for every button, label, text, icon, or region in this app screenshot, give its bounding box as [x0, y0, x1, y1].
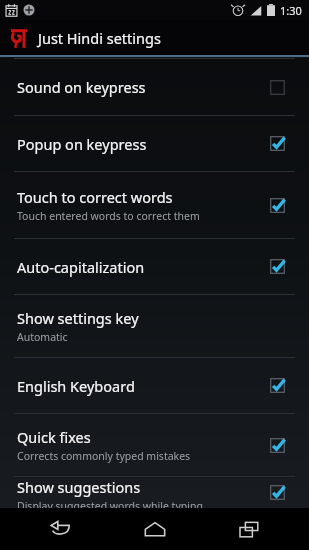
button[interactable]: Recent apps	[214, 508, 284, 550]
button[interactable]: Auto-capitalization	[0, 239, 309, 294]
staticText: Quick fixes	[17, 427, 91, 447]
button[interactable]: Sound on keypress	[0, 59, 309, 115]
button[interactable]: Popup on keypress	[0, 116, 309, 171]
staticText: Show settings key	[17, 308, 139, 328]
staticText: Automatic	[17, 330, 68, 344]
button[interactable]: Show suggestions	[0, 477, 309, 508]
button[interactable]: Touch to correct words	[0, 172, 309, 238]
button[interactable]: Back	[25, 508, 95, 550]
staticText: 1:30	[280, 3, 302, 18]
staticText: Show suggestions	[17, 477, 141, 497]
staticText: Corrects commonly typed mistakes	[17, 449, 191, 463]
staticText: Touch to correct words	[17, 187, 173, 207]
button[interactable]: English Keyboard	[0, 358, 309, 413]
staticText: Auto-capitalization	[17, 257, 145, 277]
button[interactable]: Home	[120, 508, 190, 550]
button[interactable]: Quick fixes	[0, 414, 309, 476]
staticText: Display suggested words while typing	[17, 499, 203, 508]
staticText: Popup on keypress	[17, 134, 147, 154]
button[interactable]: Show settings key	[0, 295, 309, 357]
staticText: Touch entered words to correct them	[17, 209, 200, 223]
staticText: English Keyboard	[17, 376, 135, 396]
staticText: Sound on keypress	[17, 77, 146, 97]
staticText: Just Hindi settings	[38, 28, 161, 48]
